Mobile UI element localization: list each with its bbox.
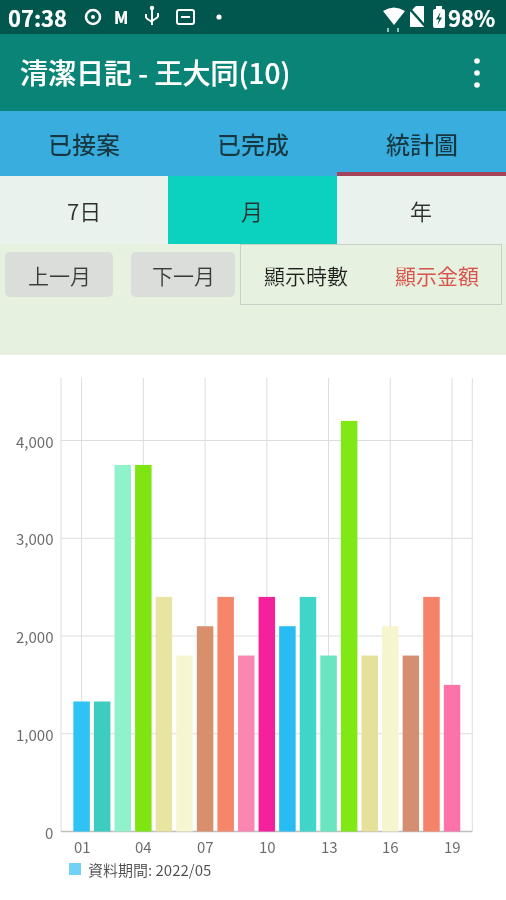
button[interactable]: 已接案 bbox=[0, 111, 168, 176]
staticText: 04 bbox=[135, 836, 152, 856]
staticText: 07:38 bbox=[8, 1, 68, 33]
staticText: 清潔日記 - 王大同(10) bbox=[20, 52, 291, 93]
staticText: 2,000 bbox=[16, 626, 54, 646]
staticText: 01 bbox=[74, 836, 91, 856]
staticText: 07 bbox=[197, 836, 214, 856]
staticText: 已接案 bbox=[48, 126, 120, 161]
staticText: 19 bbox=[444, 836, 461, 856]
staticText: 下一月 bbox=[152, 260, 215, 290]
staticText: 0 bbox=[45, 822, 54, 842]
staticText: 上一月 bbox=[28, 260, 91, 290]
button[interactable]: 統計圖 bbox=[337, 111, 506, 176]
button[interactable]: 年 bbox=[337, 176, 506, 244]
button[interactable]: 7日 bbox=[0, 176, 168, 244]
staticText: 98% bbox=[448, 1, 496, 33]
button[interactable]: 月 bbox=[168, 176, 337, 244]
staticText: 已完成 bbox=[217, 126, 289, 161]
button[interactable]: 下一月 bbox=[131, 252, 235, 297]
staticText: 1,000 bbox=[16, 724, 54, 744]
staticText: 顯示金額 bbox=[395, 260, 479, 290]
button[interactable]: 上一月 bbox=[5, 252, 113, 297]
button[interactable]: 已完成 bbox=[168, 111, 337, 176]
staticText: 4,000 bbox=[16, 431, 54, 451]
staticText: 顯示時數 bbox=[264, 260, 348, 290]
staticText: 統計圖 bbox=[386, 126, 458, 161]
staticText: 13 bbox=[321, 836, 338, 856]
staticText: 7日 bbox=[67, 194, 102, 226]
button[interactable] bbox=[458, 49, 506, 97]
staticText: 資料期間: 2022/05 bbox=[88, 859, 212, 881]
button[interactable]: 顯示金額 bbox=[371, 244, 502, 305]
staticText: 10 bbox=[259, 836, 276, 856]
staticText: M bbox=[114, 4, 129, 29]
button[interactable]: 顯示時數 bbox=[240, 244, 371, 305]
staticText: 月 bbox=[241, 194, 264, 226]
staticText: 16 bbox=[382, 836, 399, 856]
staticText: 3,000 bbox=[16, 528, 54, 548]
staticText: 年 bbox=[410, 194, 433, 226]
